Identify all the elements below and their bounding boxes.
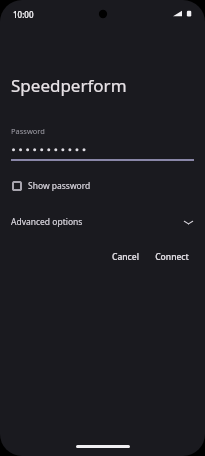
button[interactable]: Cancel (107, 248, 144, 266)
staticText: Advanced options (11, 216, 83, 228)
other: Expand advanced options (183, 219, 194, 226)
staticText: Speedperform (11, 74, 127, 97)
staticText: Show password (28, 180, 91, 192)
staticText: Password (11, 126, 45, 136)
button[interactable]: Advanced options (11, 213, 194, 231)
button[interactable]: Connect (150, 248, 194, 266)
staticText: Cancel (112, 251, 139, 263)
button[interactable]: Show password (11, 178, 92, 194)
staticText: 10:00 (13, 9, 34, 20)
staticText: Connect (155, 251, 189, 263)
